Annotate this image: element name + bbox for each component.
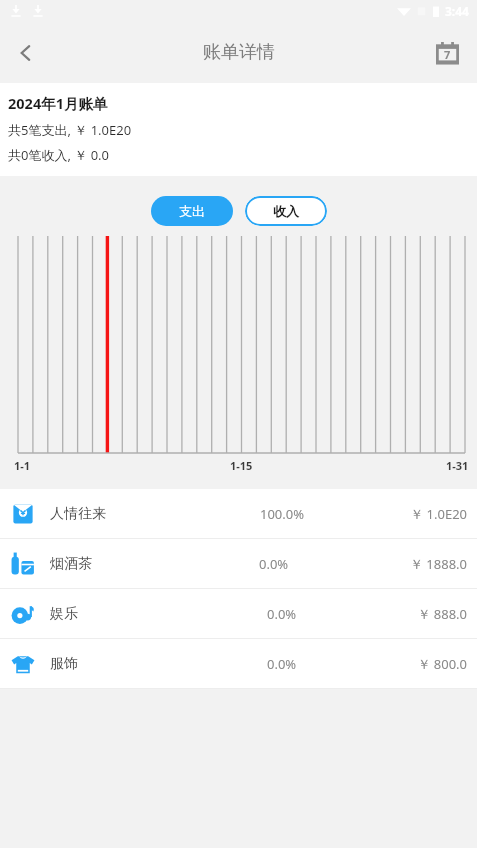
staticText: 收入 (273, 203, 299, 219)
staticText: 共5笔支出, ￥ 1.0E20 (8, 121, 132, 139)
staticText: 服饰 (50, 655, 78, 673)
staticText: 100.0% (260, 505, 305, 523)
button[interactable]: Back (0, 27, 52, 79)
button[interactable]: 支出 (151, 196, 233, 226)
staticText: ￥ 1.0E20 (410, 505, 467, 523)
button[interactable]: 人情往来 (0, 489, 477, 538)
button[interactable]: Calendar (425, 31, 469, 75)
staticText: 3:44 (445, 3, 469, 19)
button[interactable]: 烟酒茶 (0, 539, 477, 588)
staticText: 0.0% (267, 605, 297, 623)
staticText: 娱乐 (50, 605, 78, 623)
staticText: 2024年1月账单 (8, 93, 108, 113)
staticText: 1-31 (446, 458, 469, 473)
staticText: 7 (444, 47, 451, 62)
staticText: 共0笔收入, ￥ 0.0 (8, 146, 110, 164)
staticText: 支出 (179, 203, 205, 219)
button[interactable]: 服饰 (0, 639, 477, 688)
staticText: 0.0% (259, 555, 289, 573)
staticText: 1-1 (14, 458, 31, 473)
staticText: ￥ 800.0 (417, 655, 467, 673)
staticText: ￥ 1888.0 (409, 555, 467, 573)
staticText: 烟酒茶 (50, 555, 92, 573)
staticText: 人情往来 (50, 505, 106, 523)
button[interactable]: 收入 (245, 196, 327, 226)
staticText: 1-15 (230, 458, 253, 473)
button[interactable]: 娱乐 (0, 589, 477, 638)
staticText: ￥ 888.0 (417, 605, 467, 623)
staticText: 账单详情 (203, 41, 275, 64)
staticText: 0.0% (267, 655, 297, 673)
